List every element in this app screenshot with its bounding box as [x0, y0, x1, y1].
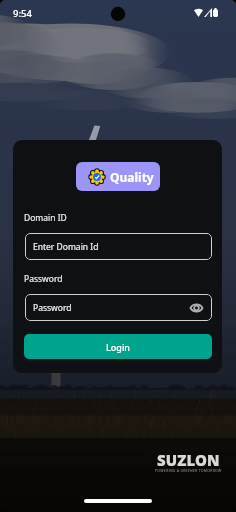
- staticText: 9:54: [13, 7, 32, 20]
- button[interactable]: Quality: [76, 162, 160, 191]
- staticText: Login: [106, 341, 130, 353]
- staticText: Quality: [110, 169, 154, 185]
- staticText: Password: [24, 273, 63, 285]
- button[interactable]: Password: [25, 294, 212, 321]
- button[interactable]: Enter Domain Id: [25, 233, 212, 260]
- staticText: Enter Domain Id: [33, 241, 99, 253]
- staticText: Password: [33, 302, 72, 314]
- staticText: POWERING A GREENER TOMORROW: [155, 468, 222, 473]
- button[interactable]: Login: [24, 334, 212, 359]
- button[interactable]: Show password: [186, 298, 206, 318]
- staticText: SUZLON: [157, 450, 220, 470]
- staticText: Domain ID: [24, 212, 67, 224]
